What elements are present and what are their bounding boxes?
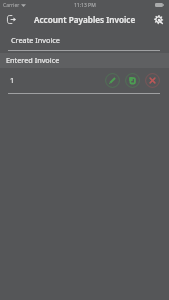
staticText: Entered Invoice [6,55,60,65]
button[interactable]: Copy [125,73,140,88]
staticText: 11:13 PM [74,2,96,9]
button[interactable]: Settings [152,13,165,26]
staticText: Account Payables Invoice [34,14,136,25]
staticText: Carrier [3,2,20,9]
staticText: Create Invoice [11,35,60,45]
button[interactable]: Delete [145,73,160,88]
button[interactable]: Log out [5,13,18,26]
staticText: 1 [10,75,15,85]
button[interactable]: 1 [0,68,169,92]
button[interactable]: Create Invoice [0,28,169,50]
button[interactable]: Edit [105,73,120,88]
